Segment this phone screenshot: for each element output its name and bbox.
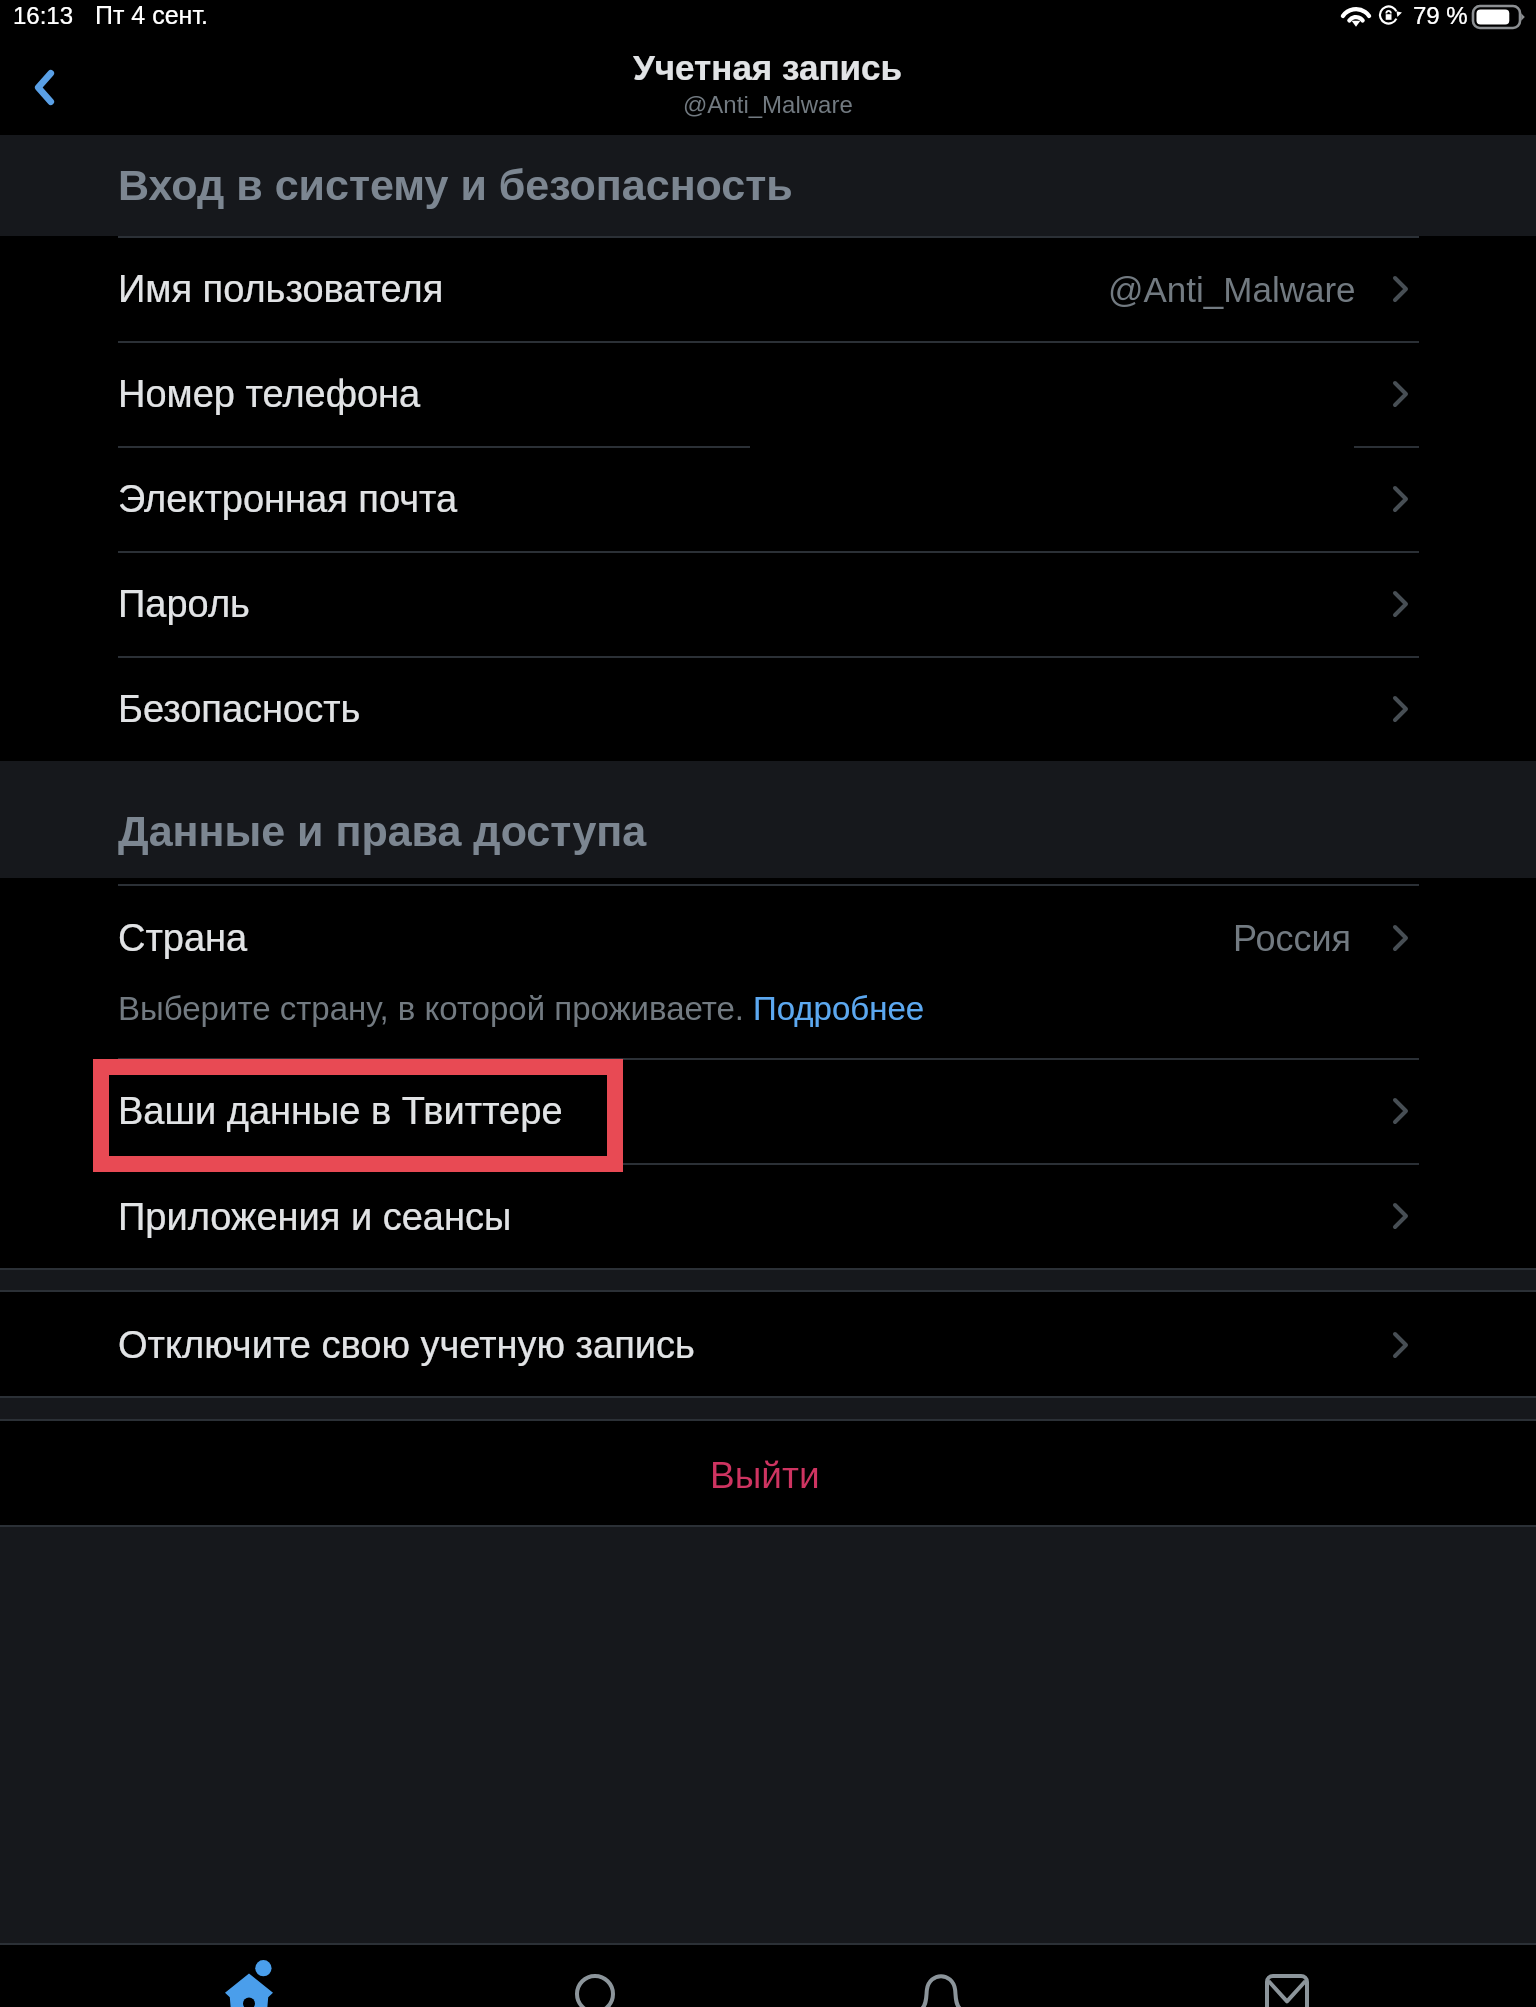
button[interactable] — [755, 980, 930, 1032]
button[interactable]: Электронная почта — [0, 448, 1536, 551]
staticText: 79 % — [1413, 2, 1468, 29]
staticText: @Anti_Malware — [1108, 270, 1356, 309]
button[interactable]: Страна — [0, 886, 1536, 1056]
staticText: Выберите страну, в которой проживаете. — [118, 990, 754, 1027]
staticText: Имя пользователя — [118, 268, 444, 310]
staticText: Пароль — [118, 583, 250, 625]
staticText: Страна — [118, 917, 248, 959]
staticText: Данные и права доступа — [118, 807, 647, 855]
staticText: Ваши данные в Твиттере — [118, 1090, 563, 1132]
button[interactable]: Search — [422, 1945, 768, 2007]
button[interactable]: Безопасность — [0, 658, 1536, 761]
staticText: Учетная запись — [633, 48, 903, 87]
staticText: Вход в систему и безопасность — [118, 161, 793, 209]
staticText: @Anti_Malware — [683, 91, 853, 118]
staticText: Безопасность — [118, 688, 361, 730]
staticText: Приложения и сеансы — [118, 1196, 512, 1238]
button[interactable]: Имя пользователя — [0, 238, 1536, 341]
button[interactable]: Выйти — [0, 1420, 1536, 1526]
staticText: Выйти — [710, 1455, 820, 1496]
staticText: Отключите свою учетную запись — [118, 1324, 695, 1366]
button[interactable]: Notifications — [768, 1945, 1114, 2007]
button[interactable]: Back — [2, 45, 90, 130]
button[interactable]: Отключите свою учетную запись — [0, 1292, 1536, 1397]
staticText: Электронная почта — [118, 478, 458, 520]
staticText: Пт 4 сент. — [95, 1, 209, 29]
button[interactable]: Пароль — [0, 553, 1536, 656]
staticText: Номер телефона — [118, 373, 421, 415]
button[interactable]: Номер телефона — [0, 343, 1536, 446]
staticText: 16:13 — [13, 2, 74, 29]
staticText: Россия — [1233, 918, 1352, 958]
staticText: Подробнее — [753, 990, 925, 1027]
button[interactable]: Ваши данные в Твиттере — [0, 1060, 1536, 1163]
button[interactable]: Messages — [1114, 1945, 1460, 2007]
button[interactable]: Home — [76, 1945, 422, 2007]
button[interactable]: Приложения и сеансы — [0, 1165, 1536, 1269]
